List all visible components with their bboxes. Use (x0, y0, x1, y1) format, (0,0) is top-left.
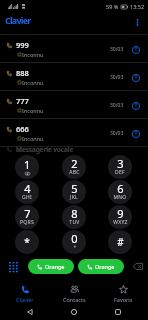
staticText: Favoris (114, 296, 133, 303)
button[interactable]: Orange (28, 259, 74, 274)
staticText: 3 (117, 156, 124, 171)
staticText: 30/03 (110, 130, 124, 137)
staticText: Inconnu (22, 135, 44, 142)
button[interactable]: Backspace (130, 259, 146, 274)
button[interactable]: 9 (108, 205, 132, 229)
staticText: 7 (24, 206, 31, 221)
button[interactable]: 0 (62, 230, 86, 254)
staticText: 2 (71, 156, 78, 171)
staticText: DEF (115, 169, 125, 176)
staticText: Messagerie vocale (16, 145, 74, 154)
button[interactable]: Call details (129, 99, 142, 112)
button[interactable]: 666 (0, 119, 148, 147)
button[interactable]: More options (127, 12, 148, 33)
staticText: Clavier (5, 14, 31, 26)
staticText: Orange (45, 263, 65, 270)
button[interactable]: 6 (108, 180, 132, 204)
staticText: 666 (16, 124, 29, 134)
staticText: 6 (117, 181, 124, 196)
staticText: 5 (71, 181, 78, 196)
button[interactable]: 2 (62, 155, 86, 179)
button[interactable]: Home (68, 306, 80, 318)
staticText: + (73, 244, 77, 251)
button[interactable]: 999 (0, 35, 148, 63)
staticText: 59 % (106, 3, 119, 10)
staticText: 777 (16, 96, 29, 106)
staticText: Inconnu (22, 51, 44, 58)
staticText: Inconnu (22, 107, 44, 114)
button[interactable]: 7 (15, 205, 39, 229)
staticText: 4 (24, 181, 31, 196)
staticText: 30/03 (110, 46, 124, 53)
staticText: Inconnu (22, 79, 44, 86)
staticText: 9 (117, 206, 124, 221)
button[interactable]: Recents (112, 306, 124, 318)
staticText: 8 (71, 206, 78, 221)
button[interactable]: 8 (62, 205, 86, 229)
button[interactable]: 5 (62, 180, 86, 204)
button[interactable]: # (108, 230, 132, 254)
button[interactable]: Call details (129, 127, 142, 140)
staticText: Orange (95, 263, 115, 270)
staticText: 0 (71, 231, 78, 246)
staticText: JKL (70, 194, 78, 201)
staticText: MNO (113, 194, 127, 201)
staticText: GHI (22, 194, 32, 201)
staticText: 30/03 (110, 102, 124, 109)
staticText: Clavier (16, 296, 34, 303)
button[interactable]: * (15, 230, 39, 254)
staticText: # (117, 235, 124, 249)
staticText: * (24, 235, 30, 249)
staticText: 1 (24, 157, 31, 172)
staticText: 999 (16, 40, 29, 50)
staticText: WXYZ (113, 219, 128, 226)
button[interactable]: Contacts (50, 283, 99, 304)
button[interactable]: Favoris (99, 283, 148, 304)
staticText: 13:52 (130, 3, 145, 10)
button[interactable]: 777 (0, 91, 148, 119)
staticText: TUV (69, 219, 80, 226)
staticText: PQRS (20, 219, 34, 226)
staticText: 888 (16, 68, 29, 78)
button[interactable]: Call details (129, 43, 142, 56)
button[interactable]: 888 (0, 63, 148, 91)
button[interactable]: 3 (108, 155, 132, 179)
button[interactable]: Back (24, 306, 36, 318)
button[interactable]: 1 (15, 155, 39, 179)
staticText: 30/03 (110, 74, 124, 81)
button[interactable]: Messagerie vocale (7, 145, 148, 159)
staticText: Contacts (63, 296, 86, 303)
button[interactable]: Clavier (0, 283, 50, 304)
button[interactable]: Keypad (5, 259, 21, 274)
button[interactable]: 4 (15, 180, 39, 204)
button[interactable]: Orange (78, 259, 124, 274)
staticText: ABC (69, 169, 80, 176)
button[interactable]: Call details (129, 71, 142, 84)
